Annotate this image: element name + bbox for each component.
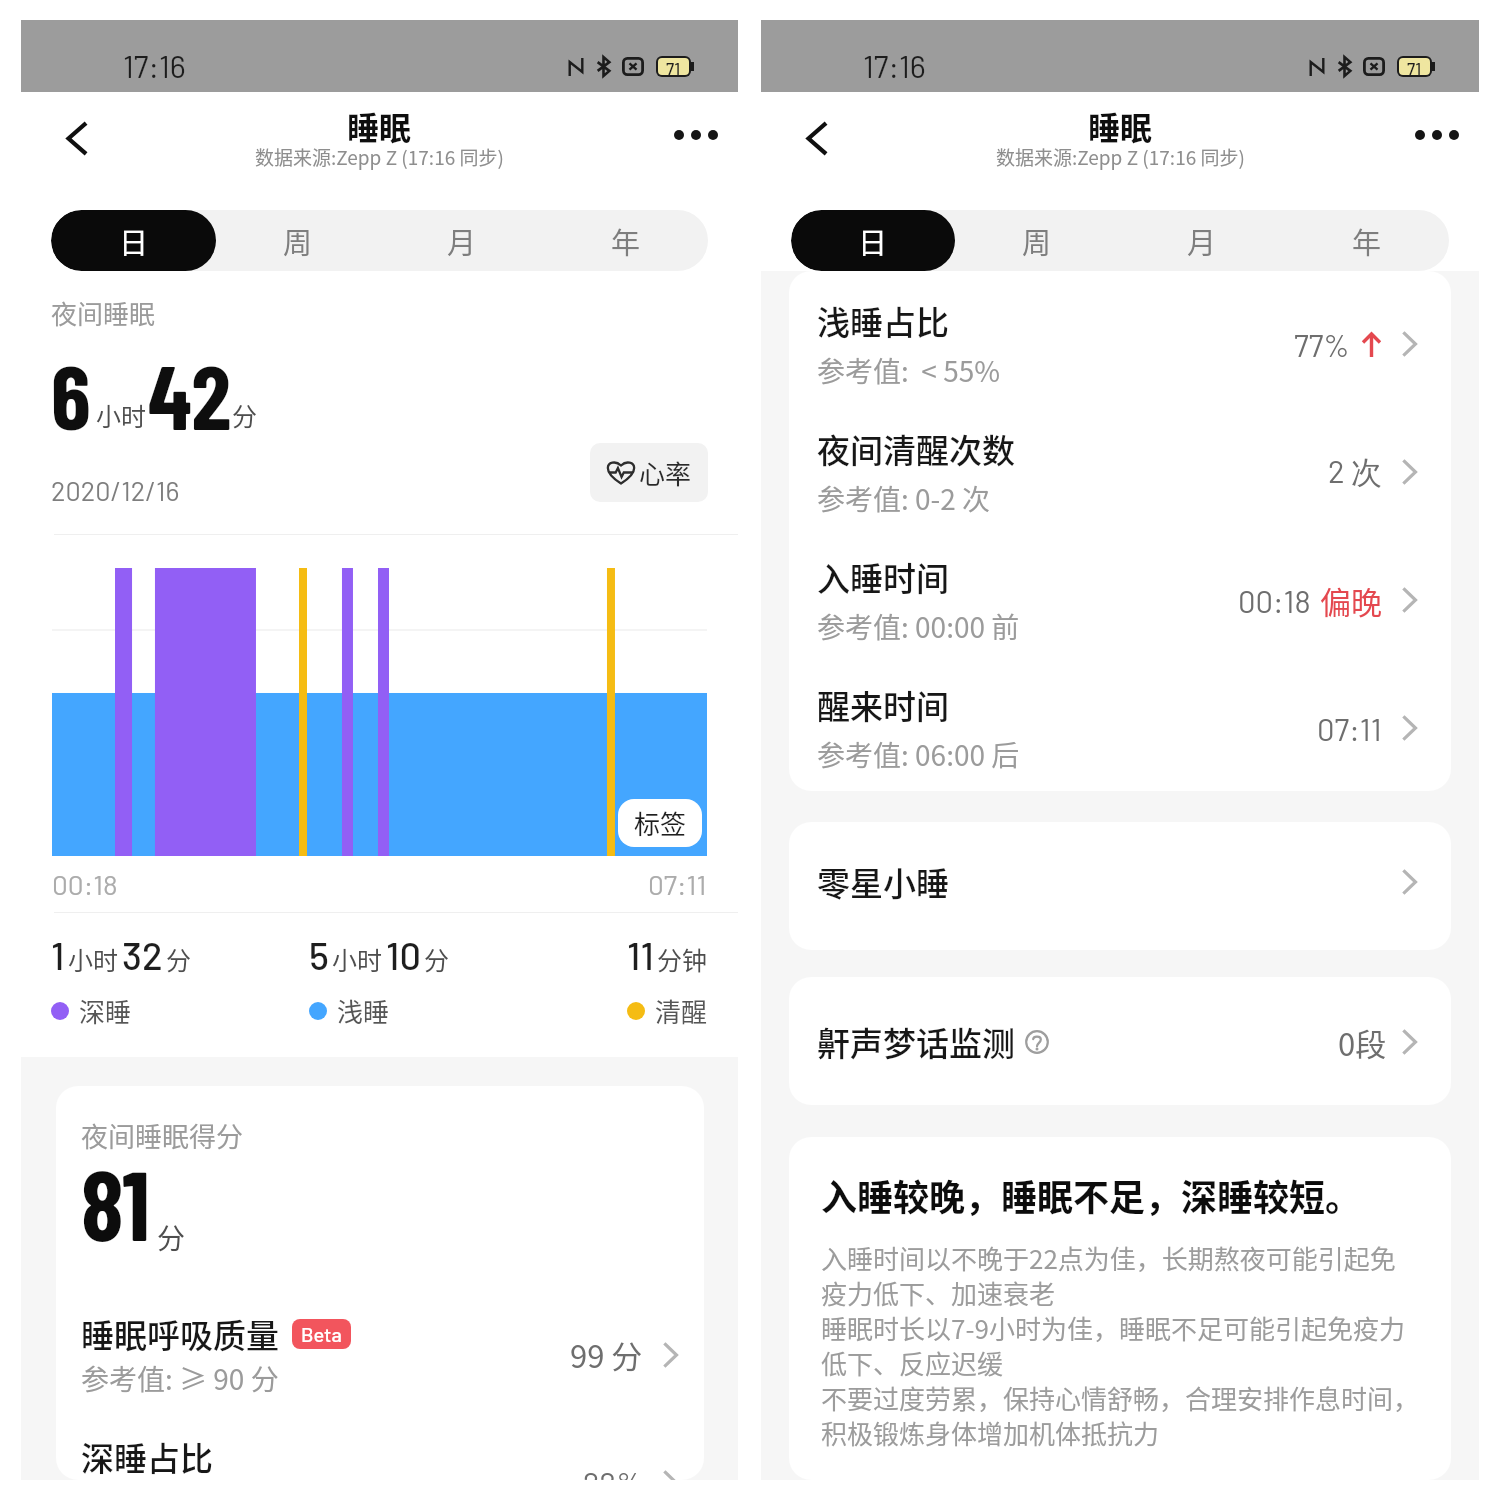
staticText: 年 [1352, 220, 1382, 262]
staticText: 0段 [1338, 1020, 1387, 1065]
staticText: 10 [386, 932, 421, 978]
staticText: 分 [424, 941, 450, 977]
staticText: 零星小睡 [817, 858, 949, 906]
staticText: 分 [166, 941, 192, 977]
staticText: 22% [583, 1464, 643, 1480]
staticText: 数据来源:Zepp Z (17:16 同步) [996, 143, 1245, 171]
staticText: 07:11 [648, 867, 707, 901]
staticText: 6 [51, 340, 91, 448]
staticText: 年 [611, 220, 641, 262]
staticText: 清醒 [655, 992, 708, 1030]
staticText: 睡眠 [347, 103, 412, 149]
button[interactable]: 日 [51, 210, 216, 271]
staticText: 71 [666, 58, 681, 75]
button[interactable]: 心率 [590, 443, 708, 502]
staticText: 07:11 [1317, 710, 1382, 747]
button[interactable]: 日 [791, 210, 955, 271]
staticText: 月 [1187, 220, 1217, 262]
staticText: 标签 [634, 804, 687, 842]
staticText: 偏晚 [1320, 578, 1382, 623]
staticText: 77% [1294, 326, 1350, 363]
staticText: 鼾声梦话监测 [817, 1018, 1015, 1066]
staticText: 日 [119, 220, 149, 262]
staticText: 深睡 [79, 992, 132, 1030]
staticText: 17:16 [863, 47, 926, 84]
staticText: 00:18 [1238, 582, 1311, 619]
staticText: 浅睡 [337, 992, 390, 1030]
button[interactable]: 鼾声梦话监测 [789, 977, 1451, 1105]
staticText: 入睡较晚，睡眠不足，深睡较短。 [821, 1169, 1362, 1221]
button[interactable]: More options [1408, 106, 1466, 164]
button[interactable]: 夜间清醒次数 [817, 425, 1417, 519]
staticText: 醒来时间 [817, 681, 949, 729]
button[interactable]: More options [667, 106, 725, 164]
staticText: 日 [858, 220, 888, 262]
button[interactable]: 醒来时间 [817, 681, 1417, 775]
staticText: 1 [51, 932, 65, 978]
button[interactable]: 月 [1119, 210, 1284, 271]
button[interactable]: 月 [380, 210, 544, 271]
staticText: 5 [309, 932, 329, 978]
button[interactable]: 周 [216, 210, 380, 271]
button[interactable]: 入睡时间 [817, 553, 1417, 647]
staticText: 分钟 [657, 941, 708, 977]
staticText: 深睡占比 [81, 1433, 213, 1480]
button[interactable]: 周 [955, 210, 1119, 271]
staticText: 浅睡占比 [817, 297, 949, 345]
button[interactable]: 浅睡占比 [817, 297, 1417, 391]
staticText: 入睡时间以不晚于22点为佳，长期熬夜可能引起免 疫力低下、加速衰老 睡眠时长以7… [821, 1239, 1419, 1452]
staticText: 入睡时间 [817, 553, 949, 601]
staticText: Beta [301, 1322, 342, 1346]
button[interactable]: 年 [1284, 210, 1449, 271]
staticText: 参考值: 06:00 后 [817, 734, 1020, 775]
staticText: 睡眠呼吸质量 [81, 1310, 279, 1358]
staticText: 分 [232, 397, 258, 433]
staticText: 夜间睡眠 [51, 294, 156, 332]
button[interactable]: 深睡占比 [81, 1433, 678, 1480]
staticText: 42 [148, 340, 231, 448]
staticText: 月 [447, 220, 477, 262]
staticText: 周 [283, 220, 313, 262]
staticText: 17:16 [123, 47, 186, 84]
staticText: 小时 [96, 397, 147, 433]
button[interactable]: 睡眠呼吸质量 [81, 1310, 678, 1399]
staticText: 夜间清醒次数 [817, 425, 1015, 473]
staticText: 2020/12/16 [51, 474, 180, 506]
staticText: 99 分 [570, 1332, 643, 1377]
button[interactable]: 标签 [618, 799, 702, 847]
staticText: 参考值: 00:00 前 [817, 606, 1020, 647]
button[interactable]: Back [47, 109, 105, 167]
staticText: 心率 [639, 454, 692, 492]
staticText: 小时 [68, 941, 119, 977]
staticText: 参考值: < 55% [817, 350, 1001, 391]
button[interactable]: Back [787, 109, 845, 167]
staticText: 参考值: 0-2 次 [817, 478, 991, 519]
button[interactable]: 年 [544, 210, 708, 271]
button[interactable]: 零星小睡 [789, 822, 1451, 950]
staticText: 2 次 [1328, 452, 1382, 492]
staticText: 分 [157, 1217, 186, 1258]
staticText: 32 [122, 932, 163, 978]
staticText: 参考值: ≥ 90 分 [81, 1358, 279, 1399]
staticText: 11 [627, 932, 654, 978]
staticText: 00:18 [52, 867, 118, 901]
staticText: 夜间睡眠得分 [81, 1116, 243, 1155]
staticText: 71 [1407, 58, 1422, 75]
staticText: 小时 [332, 941, 383, 977]
staticText: 数据来源:Zepp Z (17:16 同步) [255, 143, 504, 171]
staticText: 81 [81, 1144, 150, 1260]
staticText: 睡眠 [1088, 103, 1153, 149]
staticText: 周 [1022, 220, 1052, 262]
